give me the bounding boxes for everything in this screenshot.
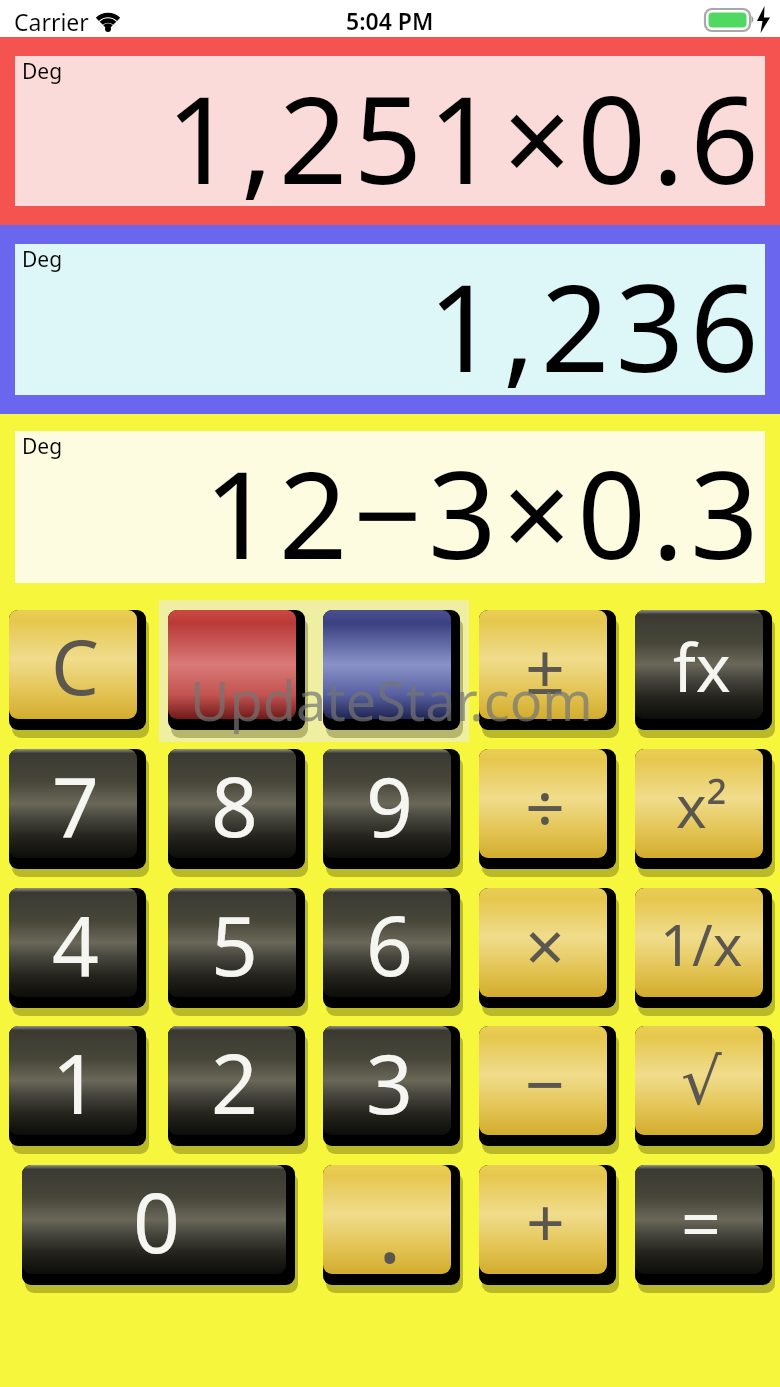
staticText: Deg <box>22 245 63 274</box>
staticText: √ <box>681 1045 722 1120</box>
staticText: 1/x <box>660 906 743 982</box>
staticText: 1 <box>52 1026 99 1138</box>
button[interactable]: 2 <box>168 1026 305 1146</box>
button[interactable]: 7 <box>9 749 146 869</box>
button[interactable]: 9 <box>323 749 460 869</box>
staticText: − <box>525 1035 566 1130</box>
staticText: x² <box>676 766 727 845</box>
button[interactable]: × <box>479 888 616 1008</box>
staticText: 7 <box>52 749 99 861</box>
staticText: UpdateStar.com <box>190 663 593 737</box>
button[interactable]: = <box>635 1165 772 1285</box>
staticText: × <box>525 897 566 992</box>
button[interactable]: fx <box>635 610 772 730</box>
button[interactable]: C <box>9 610 146 730</box>
button[interactable]: . <box>323 1165 460 1285</box>
staticText: 3 <box>366 1026 413 1138</box>
button[interactable]: 8 <box>168 749 305 869</box>
button[interactable]: 6 <box>323 888 460 1008</box>
staticText: 8 <box>211 749 258 861</box>
staticText: ÷ <box>525 758 566 853</box>
button[interactable]: x² <box>635 749 772 869</box>
staticText: 12−3×0.3 <box>204 431 765 583</box>
button[interactable]: 0 <box>22 1165 295 1285</box>
staticText: 4 <box>52 888 99 1000</box>
staticText: 5:04 PM <box>346 5 434 33</box>
staticText: 2 <box>211 1026 258 1138</box>
button[interactable]: ÷ <box>479 749 616 869</box>
staticText: fx <box>673 621 731 711</box>
button[interactable]: 4 <box>9 888 146 1008</box>
staticText: 1,251×0.6 <box>166 56 765 206</box>
staticText: + <box>526 1175 565 1268</box>
staticText: Deg <box>22 57 63 86</box>
staticText: 0 <box>133 1165 180 1277</box>
button[interactable]: 1/x <box>635 888 772 1008</box>
staticText: = <box>681 1174 722 1269</box>
button[interactable]: 3 <box>323 1026 460 1146</box>
staticText: ± <box>525 619 566 714</box>
staticText: Deg <box>22 432 63 461</box>
button[interactable]: ± <box>479 610 616 730</box>
staticText: 9 <box>366 749 413 861</box>
staticText: Carrier <box>14 6 89 37</box>
button[interactable] <box>168 610 305 730</box>
staticText: 1,236 <box>428 244 765 395</box>
button[interactable]: 5 <box>168 888 305 1008</box>
button[interactable] <box>323 610 460 730</box>
staticText: . <box>378 1169 402 1289</box>
staticText: C <box>51 614 100 718</box>
staticText: 6 <box>366 888 413 1000</box>
button[interactable]: 1 <box>9 1026 146 1146</box>
staticText: 5 <box>211 888 258 1000</box>
button[interactable]: + <box>479 1165 616 1285</box>
button[interactable]: √ <box>635 1026 772 1146</box>
button[interactable]: − <box>479 1026 616 1146</box>
